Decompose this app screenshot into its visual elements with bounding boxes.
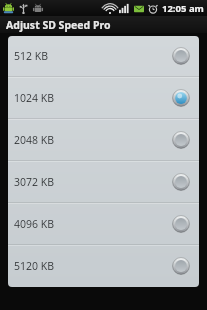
staticText: 12:05 am — [162, 2, 204, 15]
button[interactable]: 2048 KB — [8, 120, 199, 160]
button[interactable]: 5120 KB — [8, 246, 199, 286]
other: 2048 KB — [171, 130, 191, 150]
other: 5120 KB — [171, 256, 191, 276]
other: 3072 KB — [171, 172, 191, 192]
staticText: 512 KB — [14, 49, 49, 63]
other: 512 KB — [171, 46, 191, 66]
button[interactable]: 3072 KB — [8, 162, 199, 202]
staticText: 1024 KB — [14, 91, 55, 105]
staticText: 4096 KB — [14, 217, 55, 231]
other: 4096 KB — [171, 214, 191, 234]
staticText: 2048 KB — [14, 133, 55, 147]
button[interactable]: 4096 KB — [8, 204, 199, 244]
button[interactable]: 1024 KB — [8, 78, 199, 118]
staticText: 3072 KB — [14, 175, 55, 189]
staticText: Adjust SD Speed Pro — [6, 18, 111, 32]
button[interactable]: 512 KB — [8, 36, 199, 76]
other: 1024 KB selected — [171, 88, 191, 108]
staticText: 5120 KB — [14, 259, 55, 273]
